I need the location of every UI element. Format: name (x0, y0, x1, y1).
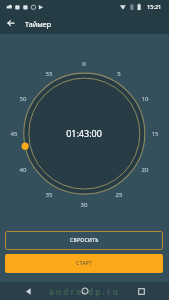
staticText: 20 (135, 166, 155, 174)
staticText: 40 (13, 166, 33, 174)
staticText: 0 (74, 60, 94, 68)
button[interactable]: СТАРТ (5, 254, 163, 273)
staticText: 15:21 (147, 3, 162, 11)
staticText: 50 (13, 95, 33, 103)
staticText: androidp.ru (0, 286, 169, 297)
button[interactable]: Recents (113, 282, 169, 300)
staticText: 5 (109, 70, 129, 78)
staticText: 55 (39, 70, 59, 78)
button[interactable]: Back (0, 14, 20, 34)
staticText: 10 (135, 95, 155, 103)
button[interactable]: Home (57, 282, 113, 300)
button[interactable]: СБРОСИТЬ (5, 231, 163, 250)
staticText: Таймер (25, 19, 52, 29)
staticText: СТАРТ (76, 260, 93, 267)
staticText: СБРОСИТЬ (70, 237, 99, 244)
staticText: 01:43:00 (44, 127, 124, 139)
staticText: 25 (109, 191, 129, 199)
staticText: 35 (39, 191, 59, 199)
staticText: 45 (4, 130, 24, 138)
button[interactable]: Back (0, 282, 57, 300)
staticText: 30 (74, 201, 94, 209)
staticText: 15 (145, 130, 165, 138)
